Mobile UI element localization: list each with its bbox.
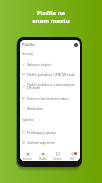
staticText: Več xyxy=(70,157,75,161)
button[interactable]: Plačilo položnice UPN/QR koda xyxy=(20,69,80,79)
button[interactable]: Prenos med lastnimi računi xyxy=(20,93,80,103)
staticText: Predlagaj prijatelju xyxy=(27,130,57,134)
staticText: doniraj xyxy=(22,52,33,56)
button[interactable]: Več xyxy=(65,151,80,161)
staticText: Splošno xyxy=(22,118,34,122)
staticText: Nakup e-vinjete xyxy=(27,62,52,66)
staticText: Plačila xyxy=(22,42,35,48)
staticText: Kartice xyxy=(53,157,62,161)
staticText: Nastavitve xyxy=(27,106,44,110)
staticText: Domov xyxy=(23,157,32,161)
button[interactable]: Predlagaj prijatelju xyxy=(20,127,80,137)
button[interactable]: Seznam odjemnih xyxy=(20,137,80,147)
staticText: Plačila na enem mestu xyxy=(32,9,70,25)
button[interactable]: Profile xyxy=(74,43,78,47)
staticText: E-računi xyxy=(27,150,40,154)
button[interactable]: Nakup e-vinjete xyxy=(20,59,80,69)
button[interactable]: Nastavitve xyxy=(20,103,80,113)
staticText: Plačilo položnice s skeniranjem QR kode xyxy=(27,82,75,90)
button[interactable]: Kartice xyxy=(50,151,65,161)
button[interactable]: Domov xyxy=(20,151,35,161)
button[interactable]: Plačila xyxy=(35,151,50,161)
button[interactable]: E-računi xyxy=(20,147,80,157)
staticText: Prenos med lastnimi računi xyxy=(27,96,70,100)
staticText: Seznam odjemnih xyxy=(27,140,55,144)
staticText: Plačilo položnice UPN/QR koda xyxy=(27,72,75,76)
button[interactable]: Plačilo položnice s skeniranjem QR kode xyxy=(20,79,80,93)
staticText: Plačila xyxy=(39,157,47,161)
